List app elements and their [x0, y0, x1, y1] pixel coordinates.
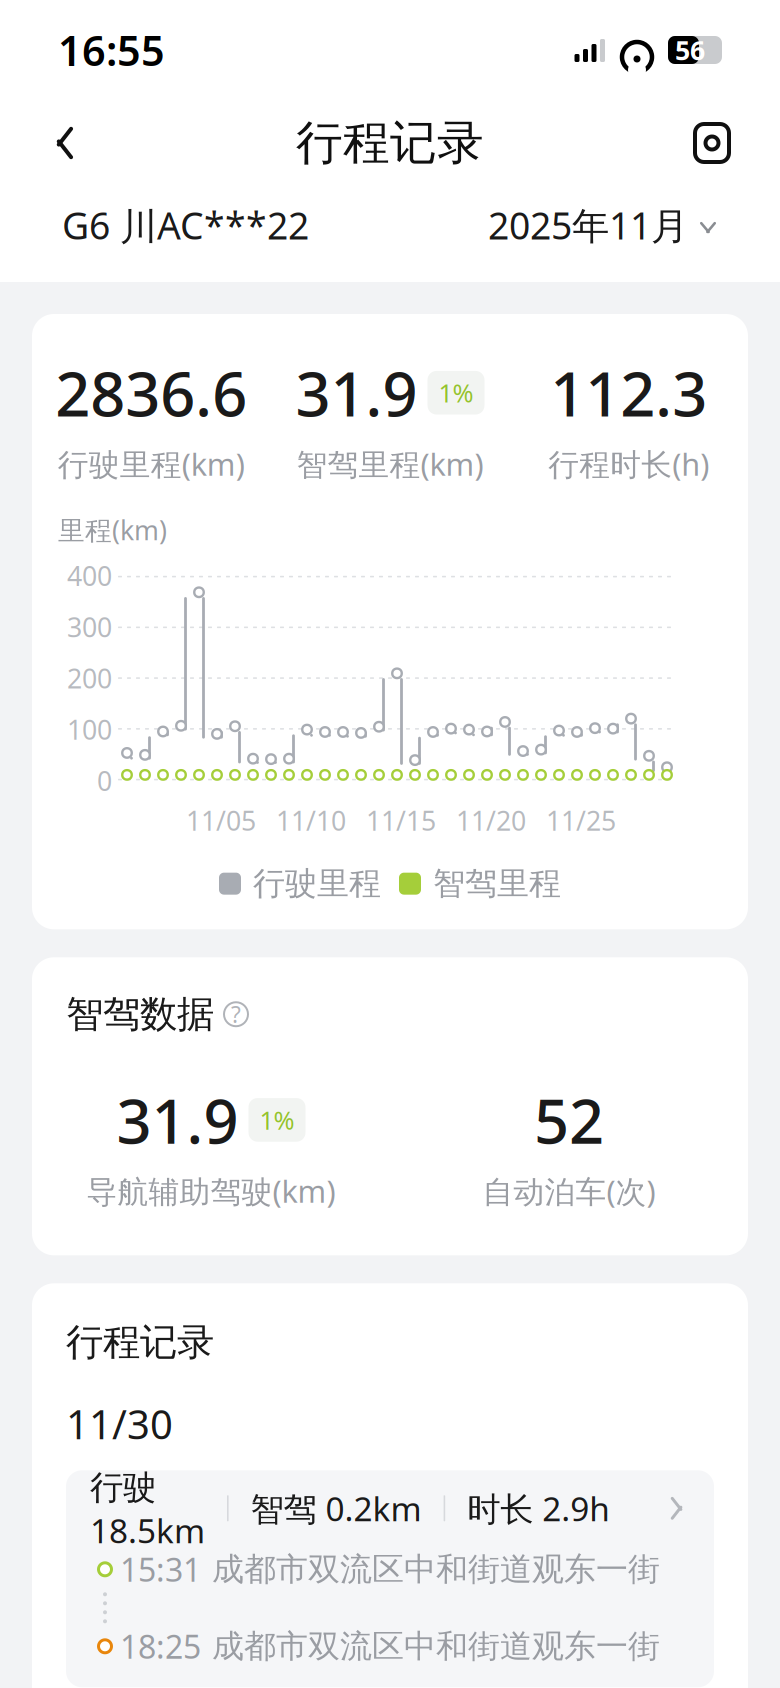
- staticText: 18:25: [120, 1625, 201, 1668]
- staticText: 行程时长(h): [548, 443, 709, 484]
- button[interactable]: 2025年11月: [488, 200, 718, 250]
- staticText: 11/05: [186, 803, 256, 838]
- button[interactable]: 设置: [670, 111, 734, 175]
- staticText: ?: [231, 999, 241, 1029]
- staticText: 11/20: [456, 803, 526, 838]
- staticText: 行驶 18.5km: [90, 1464, 205, 1552]
- staticText: 31.9: [116, 1079, 238, 1161]
- staticText: 16:55: [58, 23, 165, 77]
- staticText: 11/25: [546, 803, 616, 838]
- staticText: 行驶里程: [253, 864, 381, 903]
- staticText: 智驾数据: [66, 991, 214, 1037]
- staticText: G6 川AC***22: [62, 200, 309, 250]
- staticText: 里程(km): [58, 512, 167, 548]
- staticText: 智驾里程: [433, 864, 561, 903]
- button[interactable]: 智驾数据说明: [224, 999, 248, 1029]
- staticText: 11/10: [276, 803, 346, 838]
- staticText: 15:31: [120, 1548, 201, 1591]
- staticText: 300: [67, 609, 112, 644]
- staticText: 成都市双流区中和街道观东一街: [212, 1550, 660, 1589]
- button[interactable]: 行驶 18.5km: [66, 1470, 714, 1687]
- staticText: 31.9: [295, 352, 417, 433]
- staticText: 行驶里程(km): [58, 443, 245, 484]
- staticText: 11/30: [66, 1397, 173, 1450]
- staticText: 导航辅助驾驶(km): [86, 1171, 335, 1211]
- staticText: 200: [67, 660, 112, 696]
- staticText: 智驾里程(km): [296, 443, 483, 484]
- staticText: 智驾 0.2km: [251, 1486, 422, 1530]
- staticText: 52: [534, 1079, 604, 1161]
- staticText: 100: [67, 712, 112, 747]
- staticText: 自动泊车(次): [482, 1171, 655, 1211]
- staticText: 2836.6: [55, 352, 247, 433]
- staticText: 56: [675, 32, 705, 68]
- staticText: 11/15: [366, 803, 436, 838]
- staticText: 行程记录: [296, 114, 484, 172]
- staticText: 0: [97, 763, 112, 798]
- staticText: 2025年11月: [488, 200, 688, 250]
- staticText: 成都市双流区中和街道观东一街: [212, 1627, 660, 1666]
- staticText: 行程记录: [66, 1319, 214, 1365]
- button[interactable]: 返回: [46, 111, 110, 175]
- staticText: 时长 2.9h: [467, 1486, 610, 1530]
- staticText: 1%: [438, 376, 473, 409]
- staticText: 400: [67, 558, 112, 593]
- staticText: 112.3: [550, 352, 707, 433]
- staticText: 1%: [259, 1103, 294, 1137]
